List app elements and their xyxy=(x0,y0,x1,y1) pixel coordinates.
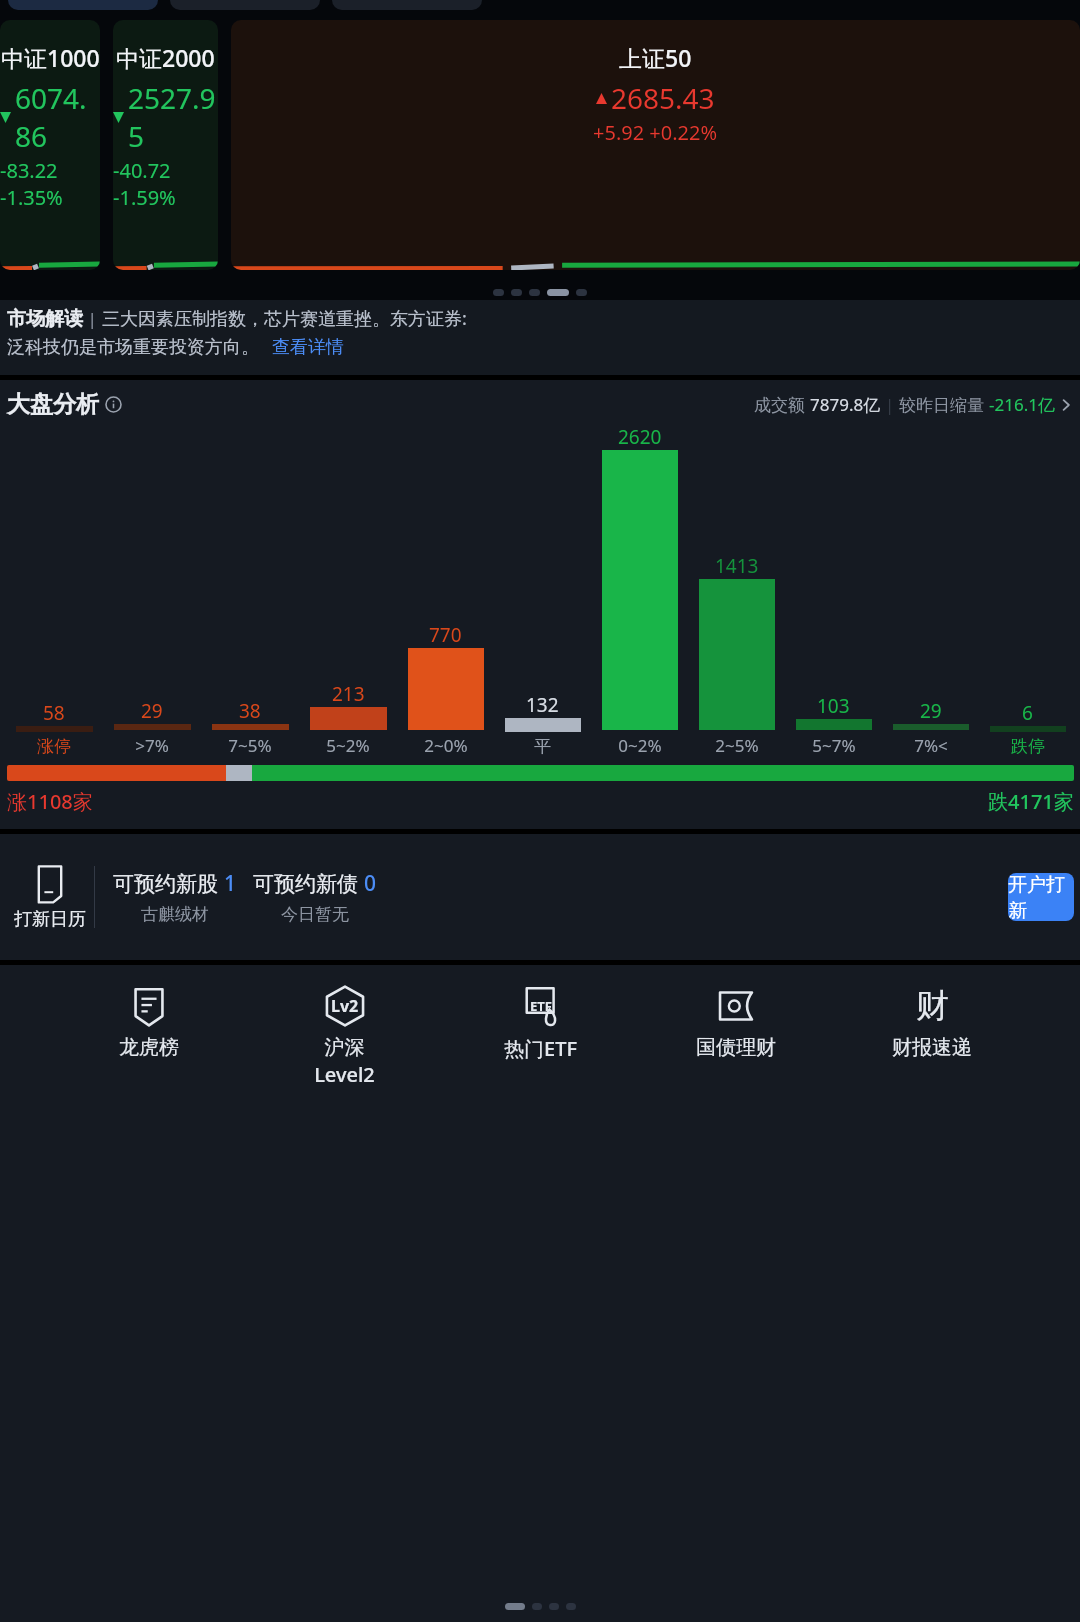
staticText: 古麒绒材 xyxy=(141,904,209,925)
staticText: 2685.43 xyxy=(611,79,715,117)
staticText: 市场解读 xyxy=(7,307,83,331)
staticText: 770 xyxy=(429,622,462,648)
button[interactable]: 市场解读 xyxy=(0,300,1080,375)
button[interactable]: 沪深Level2 xyxy=(297,985,392,1088)
staticText: 6074.86 xyxy=(15,79,100,155)
staticText: -83.22 -1.35% xyxy=(0,157,100,211)
staticText: >7% xyxy=(135,734,169,757)
staticText: 132 xyxy=(526,692,559,718)
staticText: 2527.95 xyxy=(128,79,218,155)
other: 热门ETF xyxy=(520,985,562,1027)
staticText: 跌4171家 xyxy=(988,788,1074,815)
staticText: 中证1000 xyxy=(1,42,100,73)
staticText: 热门ETF xyxy=(504,1035,577,1062)
staticText: 平 xyxy=(534,736,551,757)
staticText: | xyxy=(83,307,102,330)
staticText: 可预约新股 xyxy=(113,871,218,897)
button[interactable]: 打新日历 xyxy=(6,864,94,931)
staticText: 沪深Level2 xyxy=(297,1035,392,1088)
staticText: 7%< xyxy=(914,734,948,757)
staticText: 国债理财 xyxy=(696,1035,776,1060)
other: 龙虎榜 xyxy=(128,985,170,1027)
staticText: 今日暂无 xyxy=(281,904,349,925)
staticText: 7879.8亿 xyxy=(810,393,881,416)
staticText: 2~5% xyxy=(715,734,759,757)
staticText: 5~2% xyxy=(326,734,370,757)
other: 财报速递 xyxy=(911,985,953,1027)
button[interactable]: 中证1000 xyxy=(0,20,100,270)
other: 国债理财 xyxy=(715,985,757,1027)
staticText: 29 xyxy=(141,698,163,724)
button[interactable]: 龙虎榜 xyxy=(101,985,196,1060)
staticText: 打新日历 xyxy=(14,908,86,931)
button[interactable]: 财报速递 xyxy=(884,985,979,1060)
staticText: 较昨日缩量 xyxy=(899,393,989,416)
staticText: 2620 xyxy=(618,424,662,450)
staticText: 涨停 xyxy=(37,736,71,757)
staticText: 1413 xyxy=(715,553,759,579)
button[interactable]: 可预约新债 xyxy=(253,869,377,925)
staticText: 2~0% xyxy=(424,734,468,757)
button[interactable]: 可预约新股 xyxy=(113,869,237,925)
button[interactable]: 中证2000 xyxy=(113,20,218,270)
other: 沪深Level2 xyxy=(324,985,366,1027)
staticText: 三大因素压制指数，芯片赛道重挫。东方证券: xyxy=(102,306,467,331)
staticText: 财报速递 xyxy=(892,1035,972,1060)
staticText: ETF xyxy=(530,997,552,1015)
staticText: 中证2000 xyxy=(116,42,215,73)
button[interactable]: 开户打新 xyxy=(1008,873,1074,921)
staticText: Lv2 xyxy=(331,995,359,1017)
button[interactable]: 查看详情 xyxy=(272,336,344,359)
staticText: 成交额 xyxy=(754,393,810,416)
staticText: 跌停 xyxy=(1011,736,1045,757)
staticText: 涨1108家 xyxy=(7,788,93,815)
staticText: 38 xyxy=(239,698,261,724)
staticText: 上证50 xyxy=(619,42,692,73)
button[interactable]: 大盘分析 xyxy=(0,380,1080,423)
button[interactable]: 热门ETF xyxy=(493,985,588,1062)
staticText: 213 xyxy=(332,681,365,707)
staticText: 泛科技仍是市场重要投资方向。 xyxy=(7,336,259,359)
staticText: | xyxy=(881,394,899,416)
staticText: 0 xyxy=(364,869,377,898)
staticText: 开户打新 xyxy=(1008,873,1074,921)
staticText: 5~7% xyxy=(812,734,856,757)
staticText: 29 xyxy=(920,698,942,724)
staticText: +5.92 +0.22% xyxy=(593,119,718,146)
staticText: 可预约新债 xyxy=(253,871,358,897)
staticText: 龙虎榜 xyxy=(119,1035,179,1060)
staticText: 大盘分析 xyxy=(7,390,99,419)
staticText: -40.72 -1.59% xyxy=(113,157,218,211)
button[interactable]: 上证50 xyxy=(231,20,1080,270)
staticText: 7~5% xyxy=(228,734,272,757)
staticText: 0~2% xyxy=(618,734,662,757)
staticText: 103 xyxy=(817,693,850,719)
button[interactable]: 国债理财 xyxy=(688,985,783,1060)
staticText: 1 xyxy=(224,869,237,898)
staticText: 6 xyxy=(1022,700,1033,726)
staticText: -216.1亿 xyxy=(989,393,1055,416)
staticText: 财 xyxy=(916,985,949,1027)
staticText: 58 xyxy=(43,700,65,726)
